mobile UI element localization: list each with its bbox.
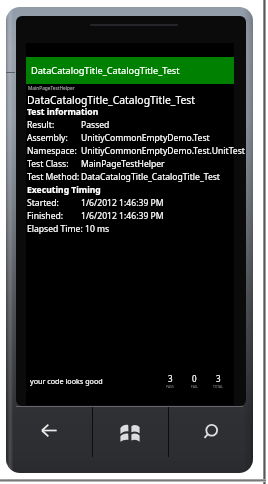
staticText: DataCatalogTitle_CatalogTitle_Test	[81, 171, 220, 183]
staticText: Passed	[81, 119, 110, 131]
staticText: Namespace:	[27, 145, 77, 157]
staticText: Test Method:	[27, 171, 80, 183]
staticText: Executing Timing	[27, 184, 101, 196]
staticText: Assembly:	[27, 132, 68, 144]
staticText: MainPageTestHelper	[28, 85, 75, 92]
staticText: Started:	[27, 197, 59, 209]
staticText: FAIL	[191, 384, 198, 389]
staticText: MainPageTestHelper	[81, 158, 165, 170]
staticText: Result:	[27, 119, 55, 131]
staticText: 3	[216, 373, 221, 384]
staticText: your code looks good	[30, 376, 103, 386]
staticText: TOTAL	[213, 384, 223, 389]
staticText: UnitiyCommonEmptyDemo.Test	[81, 132, 210, 144]
staticText: 1/6/2012 1:46:39 PM	[81, 210, 164, 222]
staticText: Elapsed Time: 10 ms	[27, 223, 110, 235]
button[interactable]: Back	[6, 406, 92, 473]
staticText: 1/6/2012 1:46:39 PM	[81, 197, 164, 209]
button[interactable]: Start	[92, 406, 168, 473]
staticText: Test Class:	[27, 158, 69, 170]
staticText: 0	[192, 373, 197, 384]
staticText: DataCatalogTitle_CatalogTitle_Test	[31, 64, 180, 77]
staticText: PASS	[166, 384, 174, 389]
staticText: Finished:	[27, 210, 64, 222]
staticText: DataCatalogTitle_CatalogTitle_Test	[27, 93, 196, 107]
staticText: UnitiyCommonEmptyDemo.Test.UnitTest	[81, 145, 245, 157]
staticText: Test information	[27, 106, 99, 118]
button[interactable]: Search	[168, 406, 253, 473]
staticText: 3	[168, 373, 173, 384]
